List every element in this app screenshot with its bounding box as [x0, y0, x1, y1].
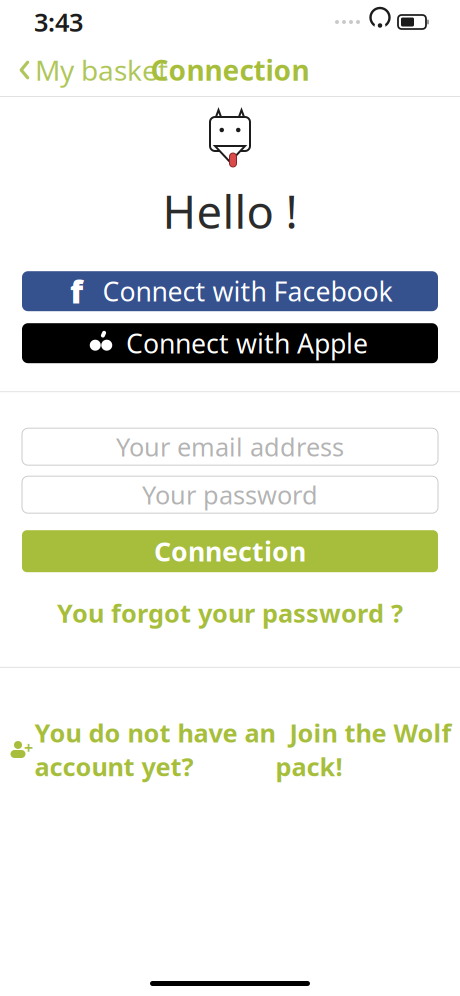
button[interactable]: Connect with Apple	[22, 323, 438, 363]
staticText: Connect with Apple	[126, 325, 368, 361]
staticText: Connection	[154, 533, 306, 569]
staticText: +	[24, 737, 33, 758]
button[interactable]: f	[22, 271, 438, 311]
staticText: My basket	[35, 51, 168, 89]
staticText: Connect with Facebook	[102, 273, 392, 309]
button[interactable]: +	[0, 708, 460, 791]
staticText: 3:43	[34, 5, 83, 39]
button[interactable]: My basket	[6, 45, 180, 95]
staticText: Your email address	[116, 430, 344, 463]
staticText: You do not have an account yet?	[34, 716, 275, 783]
staticText: Hello !	[162, 181, 297, 241]
staticText: Join the Wolf pack!	[275, 716, 451, 783]
button[interactable]: You forgot your password ?	[43, 588, 417, 638]
button[interactable]: Your password	[22, 476, 438, 513]
staticText: f	[70, 270, 83, 312]
button[interactable]: Connection	[22, 530, 438, 572]
staticText: Your password	[142, 478, 318, 511]
staticText: Connection	[150, 51, 309, 89]
button[interactable]: Your email address	[22, 428, 438, 465]
staticText: You forgot your password ?	[57, 596, 403, 630]
